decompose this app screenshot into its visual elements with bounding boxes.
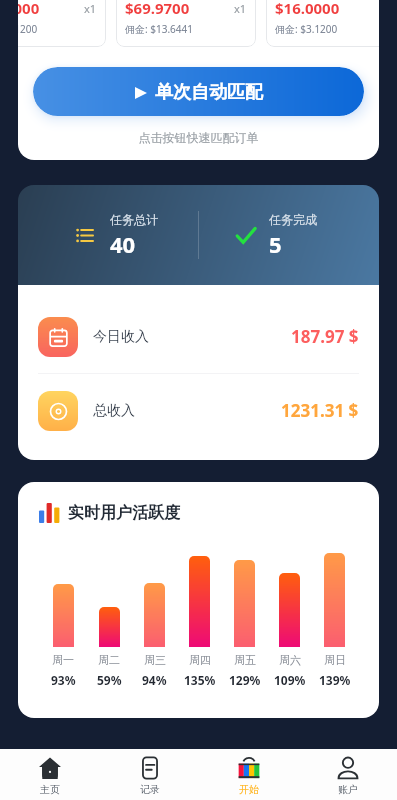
staticText: 40 — [110, 229, 136, 259]
staticText: 账户 — [338, 783, 358, 796]
staticText: 187.97 $ — [291, 325, 359, 348]
staticText: $16.0000 — [18, 0, 40, 18]
staticText: 1231.31 $ — [281, 399, 359, 422]
staticText: 5 — [269, 229, 282, 259]
staticText: 今日收入 — [93, 328, 149, 346]
staticText: 单次自动匹配 — [155, 81, 263, 104]
button[interactable]: 总收入 — [18, 374, 379, 447]
staticText: 主页 — [40, 783, 60, 796]
staticText: 周二 — [98, 653, 120, 667]
staticText: 109% — [274, 672, 306, 688]
staticText: $16.0000 — [275, 0, 340, 18]
staticText: 93% — [51, 672, 76, 688]
button[interactable]: 账户 — [298, 757, 397, 800]
staticText: 139% — [319, 672, 351, 688]
staticText: 周四 — [189, 653, 211, 667]
staticText: 59% — [97, 672, 122, 688]
staticText: 129% — [229, 672, 261, 688]
staticText: 任务总计 — [110, 212, 158, 227]
staticText: 周五 — [234, 653, 256, 667]
button[interactable]: 主页 — [0, 757, 100, 800]
staticText: 周六 — [279, 653, 301, 667]
staticText: 实时用户活跃度 — [68, 503, 180, 523]
staticText: 任务完成 — [269, 212, 317, 227]
staticText: 佣金: $3.1200 — [18, 22, 38, 36]
staticText: $69.9700 — [125, 0, 190, 18]
staticText: 总收入 — [93, 402, 135, 420]
staticText: 94% — [142, 672, 167, 688]
staticText: 周三 — [144, 653, 166, 667]
staticText: x1 — [84, 1, 97, 16]
staticText: 周日 — [324, 653, 346, 667]
staticText: 点击按钮快速匹配订单 — [18, 130, 379, 145]
staticText: 开始 — [239, 783, 259, 796]
button[interactable]: 记录 — [100, 757, 199, 800]
staticText: 记录 — [140, 783, 160, 796]
staticText: 周一 — [52, 653, 74, 667]
button[interactable]: 今日收入 — [18, 300, 379, 373]
staticText: 佣金: $3.1200 — [275, 22, 338, 36]
button[interactable]: 开始 — [199, 757, 298, 800]
staticText: 佣金: $13.6441 — [125, 22, 193, 36]
staticText: 135% — [184, 672, 216, 688]
staticText: x1 — [234, 1, 247, 16]
button[interactable]: 单次自动匹配 — [33, 67, 364, 116]
